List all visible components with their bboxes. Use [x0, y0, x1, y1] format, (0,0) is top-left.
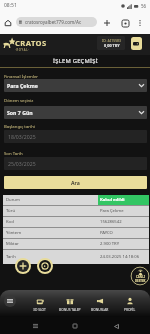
staticText: PAYCO — [100, 230, 113, 236]
staticText: Son 7 Gün — [7, 109, 33, 116]
staticText: PROFİL — [124, 307, 136, 311]
staticText: BONUS TALEP — [59, 307, 81, 311]
staticText: ID: 4415583 — [102, 38, 121, 43]
button[interactable]: Menü — [4, 295, 16, 307]
button[interactable]: 18/03/2025 — [4, 130, 147, 143]
staticText: Dönem seçiniz — [4, 97, 34, 103]
staticText: BONUSLAR — [91, 307, 109, 311]
button[interactable]: 3D SLOT — [24, 290, 55, 317]
staticText: 3D SLOT — [33, 307, 46, 311]
staticText: Para Çekme — [100, 208, 124, 214]
button[interactable]: Tabs — [119, 17, 131, 29]
staticText: Ara — [71, 179, 80, 186]
button[interactable]: ID: 4415583 — [97, 36, 125, 50]
staticText: · R O Y A L · — [15, 48, 30, 52]
staticText: 56 — [141, 3, 147, 9]
button[interactable]: WhatsApp — [39, 260, 51, 272]
button[interactable]: Para Çekme — [4, 79, 147, 92]
staticText: Son Tarih — [4, 150, 23, 156]
staticText: Durum — [6, 197, 20, 203]
staticText: 24.03.2025 14:18:06 — [100, 254, 140, 260]
staticText: 2.900 TRY — [100, 241, 120, 247]
staticText: Türü — [6, 208, 16, 214]
staticText: 08:51 — [4, 2, 17, 9]
staticText: DESTEK — [135, 279, 146, 283]
button[interactable]: Home — [69, 320, 81, 332]
staticText: İŞLEM GEÇMİŞİ — [53, 57, 98, 65]
button[interactable]: 25/03/2025 — [4, 157, 147, 170]
button[interactable]: Back — [110, 320, 122, 332]
button[interactable]: New tab — [101, 17, 113, 29]
button[interactable]: BONUS TALEP — [55, 290, 85, 317]
staticText: Kod — [6, 219, 14, 225]
button[interactable]: Son 7 Gün — [4, 106, 147, 119]
staticText: 25/03/2025 — [8, 160, 36, 167]
staticText: Kabul edildi — [100, 197, 125, 203]
button[interactable]: Para yatır — [131, 37, 142, 50]
staticText: cratosroyalbet779.com/Ac — [25, 19, 82, 25]
staticText: CANLI — [136, 275, 145, 279]
button[interactable]: Ara — [4, 176, 147, 189]
button[interactable]: Ekle — [17, 260, 29, 272]
button[interactable]: More options — [134, 17, 146, 29]
staticText: CRATOS — [15, 38, 47, 48]
staticText: 0,00 TRY — [104, 43, 120, 48]
staticText: Yöntem — [6, 230, 22, 236]
staticText: Miktar — [6, 241, 19, 247]
staticText: 18/03/2025 — [8, 133, 36, 140]
button[interactable]: Recents — [29, 320, 41, 332]
button[interactable]: Canlı Destek — [130, 266, 150, 286]
staticText: Başlangıç tarihi — [4, 123, 35, 129]
button[interactable]: Home — [2, 17, 14, 29]
button[interactable]: cratosroyalbet779.com/Ac — [16, 17, 97, 27]
staticText: Finansal İşlemler — [4, 73, 39, 79]
staticText: 156286542 — [100, 219, 122, 225]
button[interactable]: PROFİL — [115, 290, 145, 317]
staticText: Para Çekme — [7, 82, 38, 89]
staticText: Tarih — [6, 254, 16, 260]
button[interactable]: BONUSLAR — [85, 290, 115, 317]
